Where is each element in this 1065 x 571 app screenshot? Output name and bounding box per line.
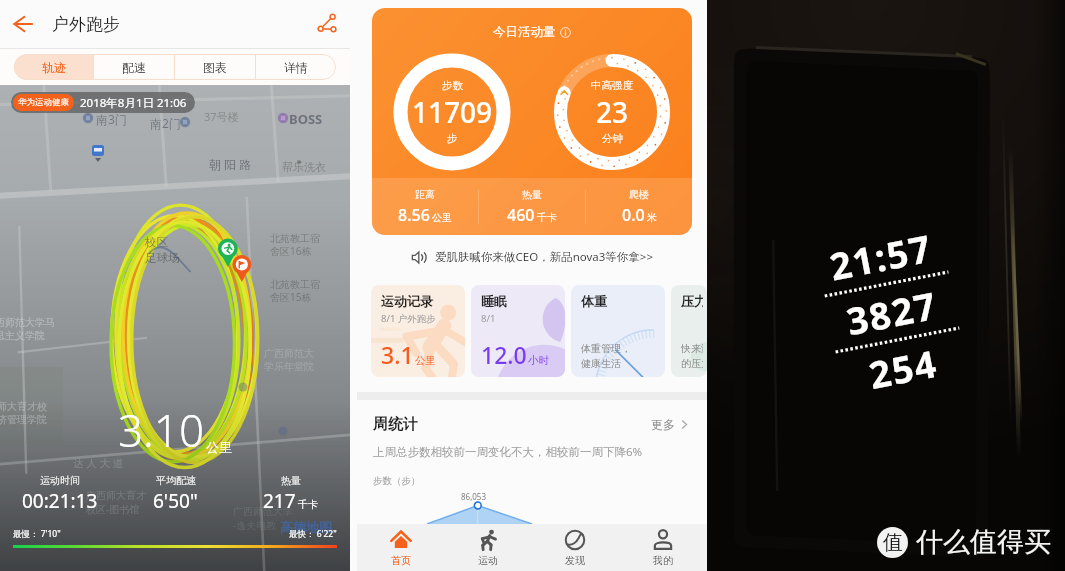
button[interactable]: Back bbox=[0, 1, 46, 47]
staticText: 小时 bbox=[528, 354, 549, 367]
button[interactable]: 配速 bbox=[94, 54, 174, 80]
button[interactable]: 体重 bbox=[571, 285, 665, 377]
button[interactable]: 运动记录 bbox=[371, 285, 465, 377]
staticText: 86,053 bbox=[461, 491, 487, 502]
staticText: 公里 bbox=[432, 211, 452, 224]
staticText: 爬楼 bbox=[629, 188, 649, 201]
staticText: 步数（步） bbox=[373, 475, 421, 487]
staticText: BOSS bbox=[289, 110, 323, 128]
button[interactable]: Share bbox=[304, 1, 350, 47]
staticText: 详情 bbox=[284, 60, 308, 75]
staticText: 校区 足球场 bbox=[145, 235, 180, 265]
staticText: 最快： 6'22" bbox=[289, 528, 337, 540]
staticText: 体重管理， bbox=[581, 342, 631, 355]
staticText: 米 bbox=[647, 211, 657, 224]
staticText: 更多 bbox=[651, 417, 675, 432]
staticText: 帮乐洗衣 bbox=[282, 160, 326, 174]
staticText: 最慢： 7'10" bbox=[13, 528, 61, 540]
staticText: 6'50" bbox=[153, 488, 198, 514]
staticText: 热量 bbox=[522, 188, 542, 201]
staticText: 运动时间 bbox=[40, 474, 80, 487]
staticText: 公里 bbox=[415, 354, 436, 367]
staticText: 广西师范大学 -逸夫电教 bbox=[233, 505, 293, 532]
staticText: 北苑教工宿 舍区16栋 bbox=[270, 232, 320, 258]
staticText: 高德地图 bbox=[280, 519, 332, 535]
staticText: 发现 bbox=[565, 554, 585, 567]
staticText: 中高强度 bbox=[591, 79, 633, 92]
staticText: 睡眠 bbox=[481, 293, 507, 309]
staticText: 2018年8月1日 21:06 bbox=[80, 95, 187, 111]
staticText: 南3门 bbox=[96, 111, 127, 127]
staticText: 8/1 bbox=[481, 312, 496, 325]
button[interactable]: 首页 bbox=[357, 524, 444, 571]
staticText: 8/1 户外跑步 bbox=[381, 312, 436, 325]
staticText: 步 bbox=[447, 132, 458, 145]
staticText: 11709 bbox=[412, 93, 493, 131]
staticText: 图表 bbox=[203, 60, 227, 75]
staticText: 南2门 bbox=[150, 115, 181, 131]
staticText: 3.10 bbox=[118, 400, 205, 460]
staticText: 华为运动健康 bbox=[18, 97, 69, 108]
staticText: 3.1 bbox=[381, 339, 414, 370]
button[interactable]: 发现 bbox=[531, 524, 619, 571]
staticText: 压力 bbox=[681, 293, 703, 309]
staticText: 距离 bbox=[415, 188, 435, 201]
staticText: 值 bbox=[883, 530, 903, 555]
staticText: 217 bbox=[263, 488, 296, 514]
staticText: 体重 bbox=[581, 293, 607, 309]
staticText: 热量 bbox=[281, 474, 301, 487]
button[interactable]: 睡眠 bbox=[471, 285, 565, 377]
staticText: 快来测您 bbox=[681, 342, 703, 355]
staticText: 达 人 大 道 bbox=[73, 456, 124, 470]
button[interactable]: 今日活动量 bbox=[372, 8, 692, 235]
staticText: 今日活动量 bbox=[493, 24, 556, 40]
staticText: 周统计 bbox=[373, 415, 418, 434]
button[interactable]: 运动 bbox=[444, 524, 531, 571]
staticText: 健康生活 bbox=[581, 357, 621, 370]
staticText: 3827 bbox=[842, 279, 942, 345]
button[interactable]: 图表 bbox=[175, 54, 255, 80]
staticText: 配速 bbox=[122, 60, 146, 75]
staticText: 广西师范大 学乐年堂院 bbox=[264, 347, 314, 373]
staticText: 朝 阳 路 bbox=[209, 156, 252, 172]
staticText: 步数 bbox=[442, 79, 463, 92]
staticText: 运动记录 bbox=[381, 293, 433, 309]
staticText: 西师范大学马 思主义学院 bbox=[0, 316, 55, 342]
staticText: 37号楼 bbox=[204, 109, 239, 124]
staticText: 北苑教工宿 舍区15栋 bbox=[270, 278, 320, 304]
staticText: 460 bbox=[507, 204, 535, 226]
staticText: 8.56 bbox=[398, 204, 430, 226]
staticText: 师大育才校 济管理学院 bbox=[0, 400, 47, 426]
staticText: 00:21:13 bbox=[22, 488, 98, 514]
button[interactable]: 轨迹 bbox=[14, 54, 93, 80]
staticText: 公里 bbox=[206, 439, 232, 455]
staticText: 轨迹 bbox=[42, 60, 66, 75]
staticText: 0.0 bbox=[622, 204, 645, 226]
staticText: 21:57 bbox=[825, 222, 937, 290]
button[interactable]: 我的 bbox=[619, 524, 707, 571]
staticText: 上周总步数相较前一周变化不大，相较前一周下降6% bbox=[373, 444, 643, 460]
button[interactable]: 详情 bbox=[256, 54, 336, 80]
staticText: 平均配速 bbox=[156, 474, 196, 487]
staticText: 的压力吧 bbox=[681, 357, 703, 370]
staticText: 12.0 bbox=[481, 339, 527, 370]
staticText: 23 bbox=[596, 93, 629, 131]
staticText: 我的 bbox=[653, 554, 673, 567]
staticText: 爱肌肤喊你来做CEO，新品nova3等你拿>> bbox=[435, 249, 654, 265]
staticText: 首页 bbox=[391, 554, 411, 567]
staticText: 254 bbox=[865, 337, 942, 399]
staticText: 什么值得买 bbox=[916, 525, 1051, 559]
button[interactable]: 周统计 bbox=[373, 415, 691, 434]
staticText: 分钟 bbox=[602, 132, 623, 145]
button[interactable]: 压力 bbox=[671, 285, 707, 377]
staticText: 户外跑步 bbox=[52, 14, 120, 35]
staticText: 千卡 bbox=[537, 211, 557, 224]
staticText: 千卡 bbox=[298, 498, 318, 511]
staticText: 广西师大育才 校区-图书馆 bbox=[86, 489, 146, 516]
staticText: 运动 bbox=[478, 554, 498, 567]
button[interactable]: 爱肌肤喊你来做CEO，新品nova3等你拿>> bbox=[357, 244, 707, 270]
